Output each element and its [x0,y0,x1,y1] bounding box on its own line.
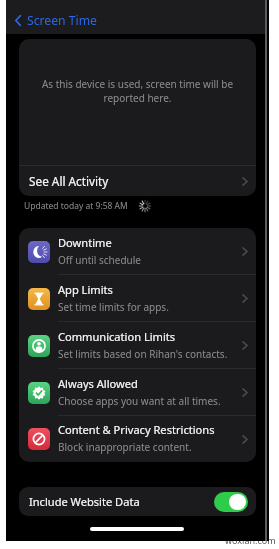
button[interactable]: Downtime [19,228,256,275]
staticText: Screen Time [27,12,97,29]
staticText: Updated today at 9:58 AM [24,200,128,212]
staticText: Downtime [58,235,112,250]
staticText: Block inappropriate content. [58,440,192,454]
staticText: Set time limits for apps. [58,300,169,314]
staticText: See All Activity [29,173,109,189]
button[interactable]: Include Website Data [19,487,256,516]
button[interactable]: Back to Screen Time [13,9,99,32]
staticText: Communication Limits [58,329,176,344]
staticText: Set limits based on Rihan's contacts. [58,347,228,361]
button[interactable]: Always Allowed [19,369,256,416]
staticText: Include Website Data [29,494,140,509]
staticText: App Limits [58,282,113,297]
staticText: Always Allowed [58,376,138,391]
staticText: Off until schedule [58,253,141,267]
staticText: woxian.com [225,534,276,546]
button[interactable]: App Limits [19,275,256,322]
button[interactable]: Content & Privacy Restrictions [19,416,256,462]
button[interactable]: See All Activity [19,166,256,196]
staticText: Content & Privacy Restrictions [58,422,215,437]
staticText: As this device is used, screen time will… [19,77,256,104]
staticText: Choose apps you want at all times. [58,394,221,408]
button[interactable]: Communication Limits [19,322,256,369]
